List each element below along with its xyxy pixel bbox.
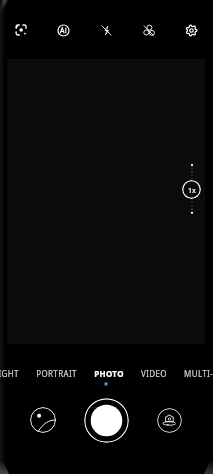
staticText: MULTI-VIEW (184, 368, 213, 379)
button[interactable]: Take photo (84, 398, 129, 443)
staticText: PORTRAIT (36, 368, 77, 379)
button[interactable]: PHOTO (94, 364, 124, 382)
staticText: VIDEO (141, 368, 167, 379)
staticText: PHOTO (94, 368, 124, 379)
button[interactable]: VIDEO (141, 364, 167, 382)
button[interactable]: MULTI-VIEW (184, 364, 213, 382)
button[interactable]: Flash off (91, 15, 121, 45)
staticText: 1x (188, 185, 196, 195)
button[interactable]: Scene optimizer (6, 15, 36, 45)
button[interactable]: Gallery (30, 407, 56, 433)
button[interactable]: Settings (176, 15, 206, 45)
button[interactable]: AI mode (48, 15, 78, 45)
button[interactable]: PORTRAIT (36, 364, 77, 382)
staticText: NIGHT (0, 368, 19, 379)
button[interactable]: Motion photo off (133, 15, 163, 45)
button[interactable]: NIGHT (0, 364, 19, 382)
button[interactable]: Switch camera (157, 408, 182, 433)
button[interactable]: 1x (182, 180, 201, 199)
